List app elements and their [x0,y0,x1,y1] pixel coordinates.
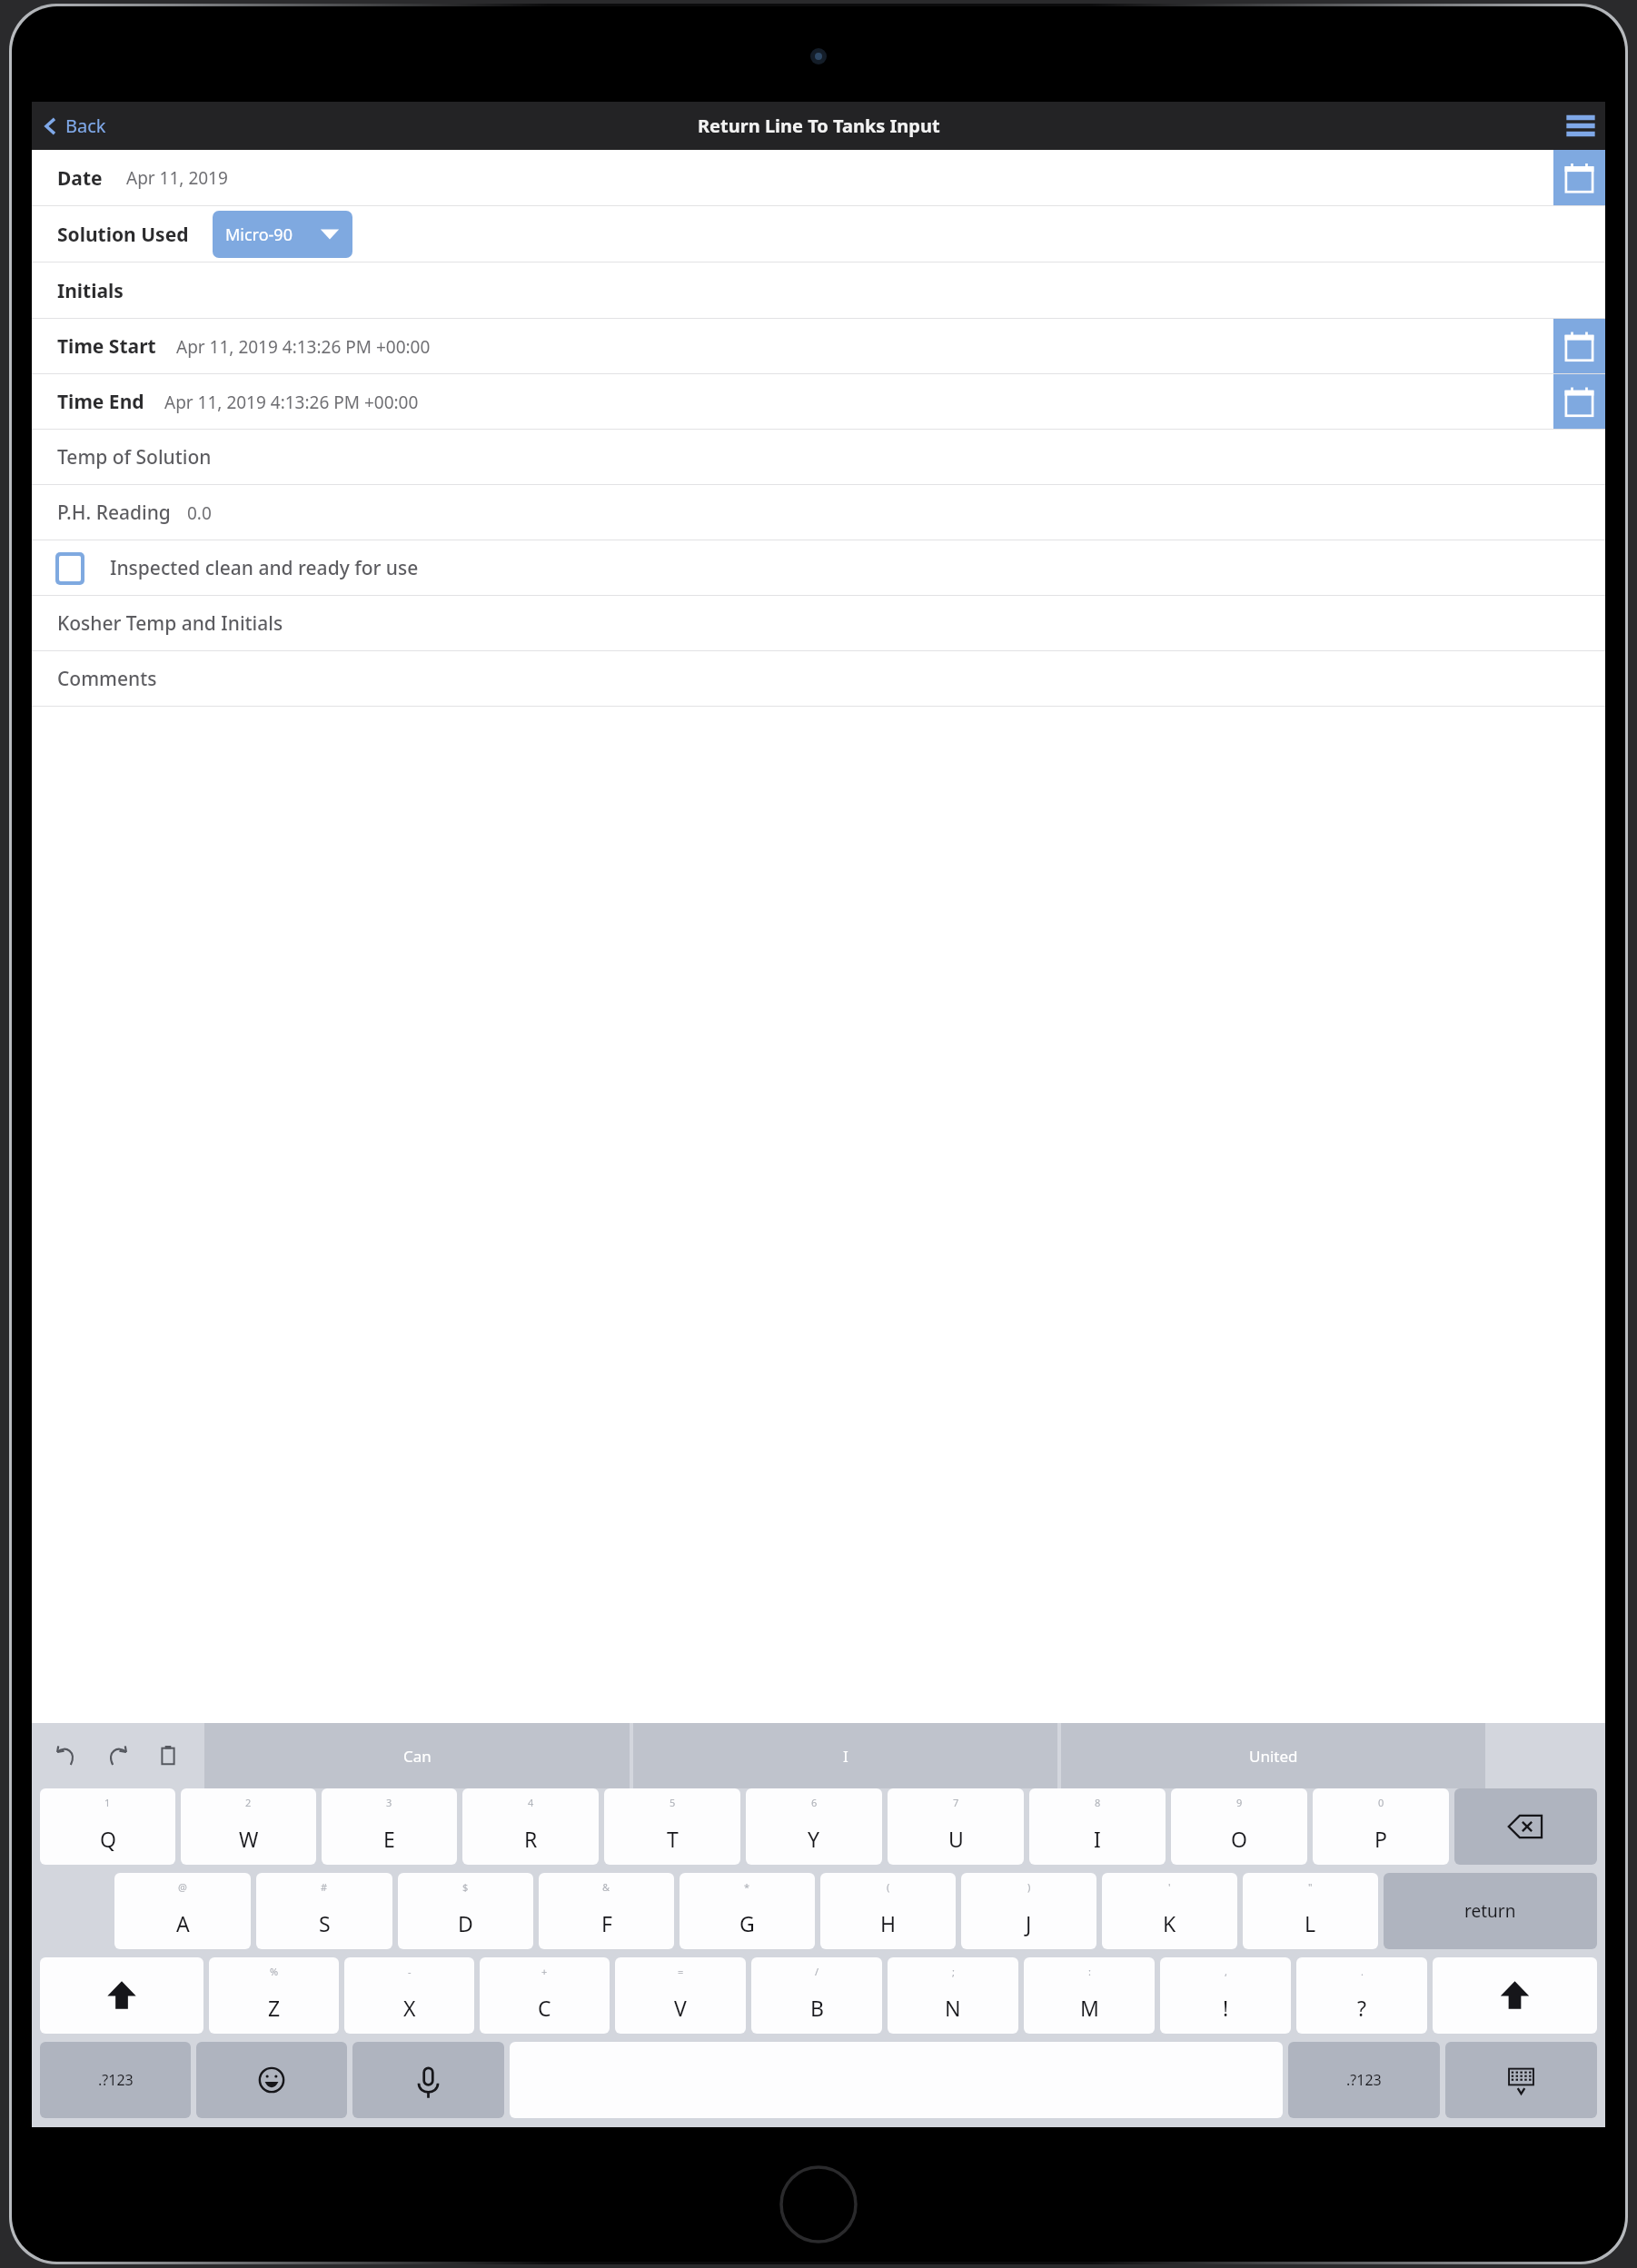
staticText: @ [178,1880,187,1894]
button[interactable]: & [539,1873,674,1949]
button[interactable]: , [1160,1957,1291,2034]
staticText: ! [1223,1994,1229,2022]
button[interactable]: I [633,1723,1057,1788]
button[interactable]: Pick date [1553,150,1605,206]
button[interactable]: 3 [322,1788,457,1865]
button[interactable]: Undo [41,1723,92,1788]
staticText: Micro-90 [225,223,293,246]
button[interactable]: Can [204,1723,630,1788]
button[interactable]: Hide keyboard [1445,2042,1597,2118]
button[interactable]: 1 [40,1788,175,1865]
staticText: D [458,1909,473,1937]
button[interactable]: Dictate [352,2042,504,2118]
button[interactable]: Micro-90 [213,211,352,258]
staticText: K [1163,1909,1176,1937]
button[interactable]: 6 [746,1788,882,1865]
staticText: return [1464,1899,1516,1923]
staticText: 9 [1236,1796,1243,1809]
staticText: Time Start [57,333,156,360]
staticText: U [948,1825,964,1853]
button[interactable]: . [1296,1957,1427,2034]
staticText: . [1361,1965,1364,1978]
staticText: L [1305,1909,1316,1937]
button[interactable]: + [480,1957,610,2034]
button[interactable]: = [615,1957,746,2034]
button[interactable]: .?123 [1288,2042,1440,2118]
staticText: * [744,1880,750,1894]
button[interactable]: 5 [604,1788,740,1865]
button[interactable]: ; [888,1957,1018,2034]
button[interactable]: Inspected clean and ready for use [55,540,1605,596]
staticText: X [403,1994,416,2022]
button[interactable]: # [256,1873,392,1949]
staticText: + [541,1965,548,1978]
staticText: Z [268,1994,281,2022]
staticText: Initials [57,278,124,304]
button[interactable]: @ [114,1873,251,1949]
button[interactable]: ( [820,1873,956,1949]
staticText: 0 [1378,1796,1384,1809]
staticText: Temp of Solution [57,444,212,470]
staticText: .?123 [1346,2070,1382,2090]
staticText: 6 [811,1796,818,1809]
staticText: S [319,1909,331,1937]
staticText: # [321,1880,328,1894]
button[interactable]: % [209,1957,339,2034]
button[interactable]: United [1061,1723,1485,1788]
staticText: ' [1168,1880,1171,1894]
button[interactable]: Redo [92,1723,143,1788]
staticText: Solution Used [57,222,189,248]
button[interactable]: return [1384,1873,1597,1949]
staticText: I [843,1746,848,1767]
button[interactable]: .?123 [40,2042,191,2118]
staticText: H [880,1909,897,1937]
button[interactable]: / [751,1957,882,2034]
button[interactable]: Pick date [1553,374,1605,430]
staticText: Date [57,165,103,192]
button[interactable]: 7 [888,1788,1024,1865]
button[interactable]: Shift [40,1957,203,2034]
button[interactable]: 0 [1313,1788,1449,1865]
staticText: 8 [1095,1796,1101,1809]
staticText: Apr 11, 2019 4:13:26 PM +00:00 [176,335,431,359]
button[interactable]: 4 [462,1788,599,1865]
staticText: & [602,1880,610,1894]
staticText: Q [100,1825,116,1853]
button[interactable]: : [1024,1957,1155,2034]
staticText: ; [952,1965,955,1978]
button[interactable]: 8 [1029,1788,1166,1865]
staticText: 0.0 [187,501,212,525]
staticText: B [810,1994,824,2022]
staticText: N [945,1994,961,2022]
button[interactable]: * [680,1873,815,1949]
button[interactable]: Emoji [196,2042,347,2118]
button[interactable]: Backspace [1454,1788,1597,1865]
staticText: / [815,1965,819,1978]
staticText: $ [462,1880,469,1894]
button[interactable]: - [344,1957,474,2034]
staticText: 1 [104,1796,111,1809]
staticText: O [1231,1825,1247,1853]
button[interactable]: Pick date [1553,319,1605,374]
button[interactable]: ) [961,1873,1096,1949]
button[interactable]: 9 [1171,1788,1307,1865]
button[interactable]: Back [41,102,106,150]
staticText: United [1249,1746,1298,1767]
button[interactable]: ' [1102,1873,1237,1949]
staticText: 7 [953,1796,959,1809]
button[interactable]: Paste [143,1723,193,1788]
staticText: Inspected clean and ready for use [110,555,419,581]
button[interactable]: Menu [1556,102,1605,150]
staticText: .?123 [98,2070,134,2090]
staticText: E [383,1825,395,1853]
button[interactable]: " [1243,1873,1378,1949]
button[interactable]: Shift [1433,1957,1597,2034]
staticText: Kosher Temp and Initials [57,610,283,637]
staticText: T [667,1825,679,1853]
staticText: Comments [57,666,157,692]
button[interactable]: $ [398,1873,533,1949]
staticText: Return Line To Tanks Input [698,114,940,138]
button[interactable]: 2 [181,1788,316,1865]
staticText: , [1225,1965,1227,1978]
